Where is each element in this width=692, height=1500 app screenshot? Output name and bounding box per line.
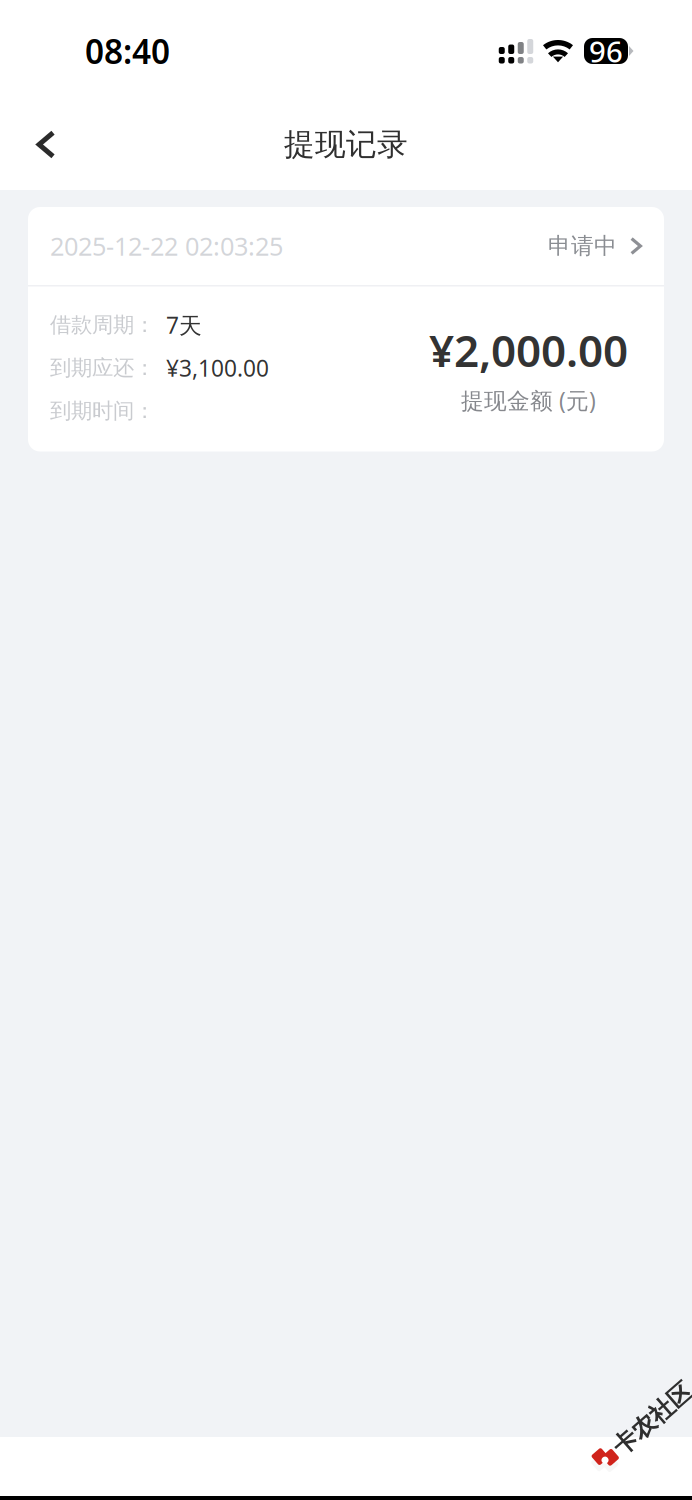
- staticText: ¥2,000.00: [429, 321, 628, 379]
- staticText: ¥3,100.00: [166, 353, 269, 383]
- staticText: 08:40: [85, 29, 170, 73]
- staticText: 借款周期：: [50, 312, 155, 338]
- button[interactable]: Back: [11, 109, 81, 179]
- staticText: 提现记录: [284, 126, 408, 163]
- staticText: 到期时间：: [50, 398, 155, 424]
- staticText: 申请中: [548, 232, 617, 260]
- button[interactable]: 2025-12-22 02:03:25: [28, 207, 664, 451]
- staticText: 7天: [166, 310, 202, 340]
- staticText: 提现金额 (元): [461, 385, 596, 415]
- staticText: 2025-12-22 02:03:25: [50, 229, 283, 263]
- staticText: 卡农社区: [608, 1413, 692, 1443]
- staticText: 96: [589, 31, 623, 70]
- staticText: 到期应还：: [50, 355, 155, 381]
